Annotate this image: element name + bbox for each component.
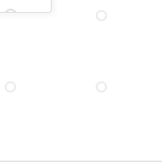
button[interactable]: Navigation menu bbox=[0, 0, 52, 13]
button[interactable]: Favourites bbox=[1, 78, 19, 96]
button[interactable]: Settings bbox=[92, 78, 110, 96]
button[interactable]: Bottom navigation bbox=[0, 159, 162, 162]
button[interactable]: Profile bbox=[92, 7, 110, 25]
